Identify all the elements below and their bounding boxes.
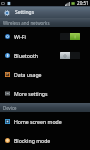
staticText: Data usage [14, 71, 80, 78]
staticText: 20:51 [77, 0, 89, 6]
staticText: Home screen mode [14, 118, 80, 125]
staticText: Settings [15, 9, 35, 16]
staticText: More settings [14, 90, 80, 97]
button[interactable]: Data usage [0, 65, 90, 84]
button[interactable]: Bluetooth [0, 46, 90, 65]
button[interactable]: Wi-Fi [0, 27, 90, 46]
button[interactable]: More settings [0, 84, 90, 103]
staticText: Bluetooth [14, 52, 60, 59]
staticText: Device [3, 105, 17, 111]
button[interactable]: Settings [0, 6, 90, 18]
button[interactable]: Home screen mode [0, 112, 90, 131]
staticText: Wi-Fi [14, 33, 60, 40]
button[interactable]: Switch on [60, 33, 80, 40]
staticText: Blocking mode [14, 137, 80, 144]
button[interactable]: Switch off [60, 52, 80, 59]
button[interactable]: Blocking mode [0, 131, 90, 150]
staticText: Wireless and networks [3, 20, 50, 26]
